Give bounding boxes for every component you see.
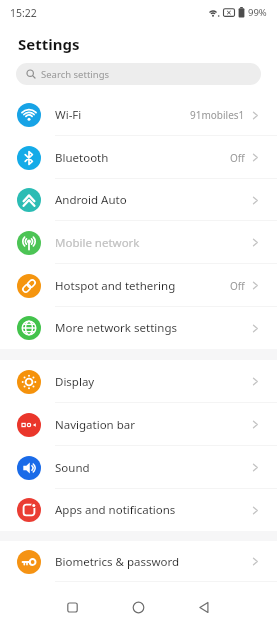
staticText: Display [55,374,95,390]
button[interactable]: Apps and notifications [0,489,277,531]
button[interactable]: Search settings [16,63,261,85]
button[interactable]: Android Auto [0,179,277,221]
button[interactable]: Wi-Fi [0,94,277,136]
button[interactable] [198,601,211,614]
staticText: Settings [18,34,80,54]
staticText: Apps and notifications [55,502,176,518]
button[interactable] [132,601,145,614]
staticText: Biometrics & password [55,554,180,570]
button[interactable]: Navigation bar [0,403,277,446]
button[interactable]: Hotspot and tethering [0,264,277,307]
button[interactable]: Bluetooth [0,136,277,179]
staticText: Mobile network [55,235,140,251]
staticText: 99% [248,6,267,19]
staticText: Sound [55,460,90,476]
staticText: More network settings [55,320,177,336]
staticText: Off [230,279,245,293]
button[interactable]: Biometrics & password [0,541,277,582]
button[interactable]: Mobile network [0,221,277,264]
staticText: Wi-Fi [55,107,82,123]
staticText: Off [230,151,245,165]
staticText: Hotspot and tethering [55,278,176,294]
button[interactable]: More network settings [0,307,277,349]
staticText: 15:22 [10,6,37,20]
button[interactable]: Sound [0,446,277,489]
button[interactable]: Display [0,360,277,403]
staticText: 91mobiles1 [190,108,245,122]
staticText: Navigation bar [55,417,135,433]
button[interactable] [66,601,79,614]
staticText: Android Auto [55,192,127,208]
staticText: Bluetooth [55,150,109,166]
staticText: Search settings [41,68,110,81]
